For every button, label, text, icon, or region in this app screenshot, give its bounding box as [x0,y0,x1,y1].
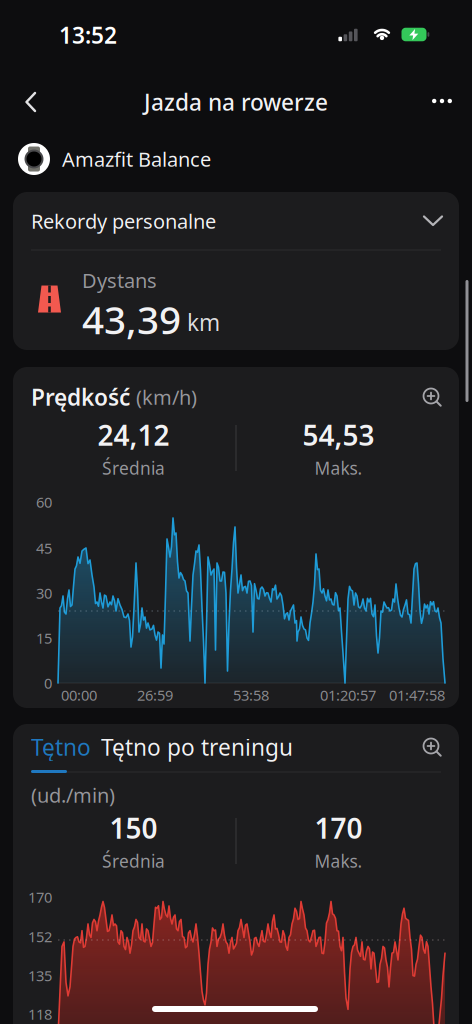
staticText: 54,53 [302,416,374,454]
button[interactable]: Więcej opcji [424,83,460,119]
staticText: km [187,307,220,337]
button[interactable]: Wstecz [13,84,49,120]
staticText: 43,39 [82,294,181,345]
staticText: Dystans [82,267,157,294]
staticText: Tętno po treningu [101,732,293,762]
button[interactable]: Tętno po treningu [101,732,293,762]
staticText: (ud./min) [31,782,115,808]
button[interactable]: Dystans [13,263,459,349]
button[interactable]: Tętno [31,732,91,762]
staticText: Tętno [31,732,91,762]
staticText: Jazda na rowerze [144,87,328,117]
staticText: 53:58 [233,685,269,705]
staticText: 152 [28,927,52,946]
staticText: 26:59 [137,685,173,705]
staticText: 170 [314,809,362,847]
staticText: (km/h) [136,384,197,410]
button[interactable]: Amazfit Balance [0,137,472,181]
staticText: 00:00 [61,685,97,705]
staticText: Średnia [102,457,165,480]
staticText: 01:47:58 [389,685,445,705]
staticText: 24,12 [97,416,169,454]
staticText: 30 [36,583,52,603]
button[interactable]: Rekordy personalne [13,192,459,250]
button[interactable]: Powiększ wykres [417,732,447,762]
staticText: 60 [36,492,52,512]
staticText: 45 [36,538,52,558]
staticText: Średnia [102,850,165,873]
staticText: Amazfit Balance [62,146,211,172]
staticText: Maks. [314,457,362,480]
staticText: 15 [36,628,52,648]
staticText: Rekordy personalne [31,208,216,234]
staticText: 118 [28,1004,52,1024]
staticText: 150 [109,809,157,847]
staticText: Maks. [314,850,362,873]
staticText: 135 [28,966,52,985]
button[interactable]: Powiększ wykres [417,382,447,412]
staticText: Prędkość [31,382,130,412]
staticText: 01:20:57 [320,685,376,705]
staticText: 13:52 [59,20,117,50]
staticText: 0 [44,673,52,693]
staticText: 170 [28,887,52,907]
